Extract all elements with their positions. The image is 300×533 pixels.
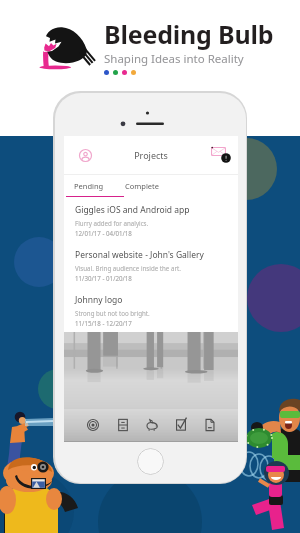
button[interactable]: Savings <box>137 409 166 441</box>
staticText: Bleeding Bulb <box>104 17 274 51</box>
button[interactable]: Profile <box>64 136 106 174</box>
button[interactable]: Documents <box>195 409 224 441</box>
button[interactable]: Giggles iOS and Android app <box>64 197 238 242</box>
button[interactable]: Files <box>108 409 137 441</box>
button[interactable]: Record <box>78 409 108 441</box>
staticText: Strong but not too bright. <box>75 309 150 317</box>
staticText: 12/01/17 - 04/01/18 <box>75 229 132 237</box>
staticText: Complete <box>125 181 160 191</box>
staticText: Johnny logo <box>75 294 123 306</box>
button[interactable]: Personal website - John's Gallery <box>64 242 238 287</box>
staticText: 11/30/17 - 01/20/18 <box>75 274 132 282</box>
button[interactable]: Complete <box>114 175 170 197</box>
staticText: Shaping Ideas into Reality <box>104 51 244 67</box>
button[interactable]: Tasks <box>166 409 195 441</box>
staticText: Flurry added for analyics. <box>75 219 149 227</box>
staticText: Personal website - John's Gallery <box>75 249 204 261</box>
button[interactable]: Pending <box>64 175 114 197</box>
button[interactable]: Messages <box>196 136 238 174</box>
button[interactable]: Johnny logo <box>64 287 238 332</box>
staticText: Projects <box>106 149 196 161</box>
staticText: Giggles iOS and Android app <box>75 204 190 216</box>
staticText: Pending <box>74 181 104 191</box>
staticText: Visual. Bring audience inside the art. <box>75 264 181 272</box>
staticText: 11/15/18 - 12/20/17 <box>75 319 132 327</box>
